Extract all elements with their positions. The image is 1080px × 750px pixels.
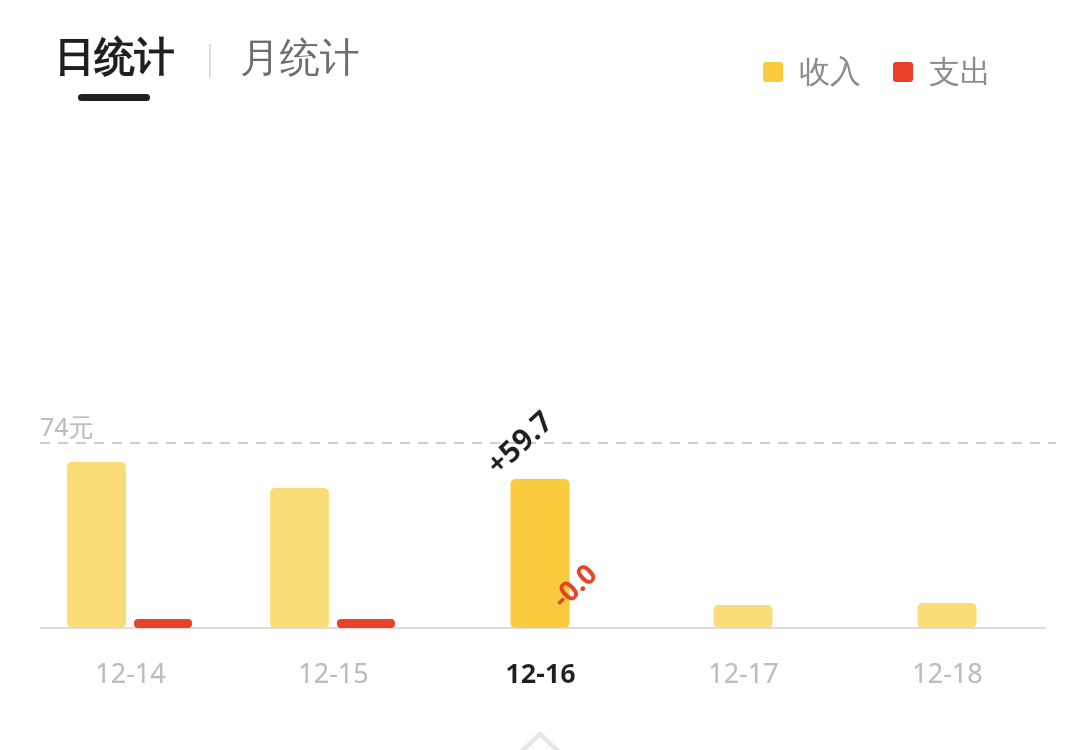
button[interactable]: 日统计 (50, 32, 178, 101)
button[interactable]: 12-18 (867, 650, 1027, 694)
button[interactable]: 12-17 (663, 650, 823, 694)
button[interactable]: Collapse (503, 720, 577, 750)
staticText: 12-16 (505, 654, 576, 691)
staticText: 日统计 (54, 32, 174, 82)
button[interactable]: 收入 (757, 48, 867, 95)
staticText: 12-14 (95, 654, 166, 691)
button[interactable]: 12-16 (460, 650, 620, 694)
staticText: 12-18 (912, 654, 983, 691)
staticText: +59.7 (476, 400, 561, 483)
staticText: 月统计 (240, 32, 360, 82)
button[interactable]: 12-15 (253, 650, 413, 694)
staticText: 74元 (40, 409, 94, 443)
staticText: -0.0 (543, 554, 604, 616)
staticText: 12-15 (298, 654, 369, 691)
staticText: 收入 (799, 52, 861, 91)
button[interactable]: 支出 (887, 48, 997, 95)
button[interactable]: 12-14 (50, 650, 210, 694)
staticText: 12-17 (708, 654, 779, 691)
button[interactable]: 月统计 (236, 32, 364, 82)
staticText: 支出 (929, 52, 991, 91)
